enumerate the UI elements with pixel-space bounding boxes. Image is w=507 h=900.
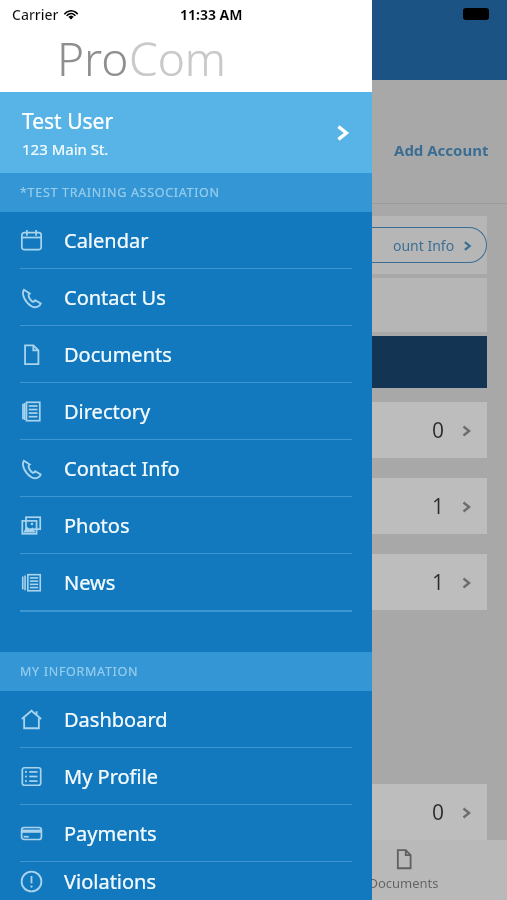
- button[interactable]: Dashboard: [0, 691, 372, 747]
- staticText: ount Info: [393, 236, 455, 255]
- button[interactable]: Directory: [0, 383, 372, 439]
- staticText: MY INFORMATION: [20, 663, 139, 680]
- button[interactable]: Documents: [0, 326, 372, 382]
- button[interactable]: Contact Info: [0, 440, 372, 496]
- staticText: My Profile: [64, 763, 159, 790]
- staticText: 0: [432, 798, 445, 827]
- button[interactable]: Payments: [0, 805, 372, 861]
- staticText: Directory: [64, 398, 151, 425]
- staticText: Violations: [64, 868, 157, 895]
- button[interactable]: Add Account: [0, 127, 507, 173]
- staticText: 1: [432, 492, 445, 521]
- button[interactable]: Photos: [0, 497, 372, 553]
- button[interactable]: Violations: [0, 862, 372, 900]
- button[interactable]: News: [0, 554, 372, 610]
- staticText: News: [64, 569, 116, 596]
- staticText: Documents: [368, 874, 439, 892]
- button[interactable]: 1: [300, 478, 487, 534]
- staticText: Com: [129, 27, 226, 90]
- staticText: *TEST TRAINING ASSOCIATION: [20, 184, 220, 201]
- button[interactable]: Contact Us: [0, 269, 372, 325]
- staticText: Photos: [64, 512, 130, 539]
- staticText: Dashboard: [64, 706, 168, 733]
- staticText: Contact Info: [64, 455, 180, 482]
- button[interactable]: My Profile: [0, 748, 372, 804]
- staticText: Carrier: [12, 5, 59, 24]
- button[interactable]: Documents: [300, 848, 507, 892]
- button[interactable]: 0: [300, 402, 487, 458]
- staticText: Calendar: [64, 227, 149, 254]
- button[interactable]: Calendar: [0, 212, 372, 268]
- staticText: 123 Main St.: [22, 139, 109, 159]
- button[interactable]: ount Info: [300, 227, 487, 263]
- staticText: Pro: [57, 27, 129, 90]
- staticText: Documents: [64, 341, 172, 368]
- staticText: Contact Us: [64, 284, 166, 311]
- staticText: 1: [432, 568, 445, 597]
- button[interactable]: Test User: [0, 92, 372, 173]
- staticText: Add Account: [394, 140, 489, 160]
- button[interactable]: 1: [300, 554, 487, 610]
- staticText: Test User: [22, 107, 114, 136]
- staticText: Payments: [64, 820, 157, 847]
- staticText: 11:33 AM: [180, 5, 243, 24]
- staticText: 0: [432, 416, 445, 445]
